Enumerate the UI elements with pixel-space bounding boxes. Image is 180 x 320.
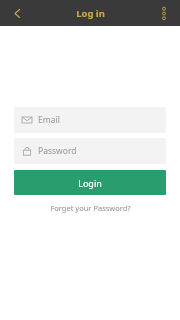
button[interactable]: More options	[155, 4, 173, 22]
staticText: Forget your Password?	[50, 203, 131, 213]
button[interactable]: Back	[6, 2, 28, 24]
button[interactable]: Forget your Password?	[44, 201, 137, 215]
staticText: Email	[38, 114, 60, 126]
staticText: Login	[78, 177, 102, 189]
staticText: Log in	[76, 7, 105, 20]
button[interactable]: Password	[14, 138, 166, 164]
staticText: Password	[38, 145, 77, 157]
button[interactable]: Email	[14, 107, 166, 133]
button[interactable]: Login	[14, 170, 166, 195]
